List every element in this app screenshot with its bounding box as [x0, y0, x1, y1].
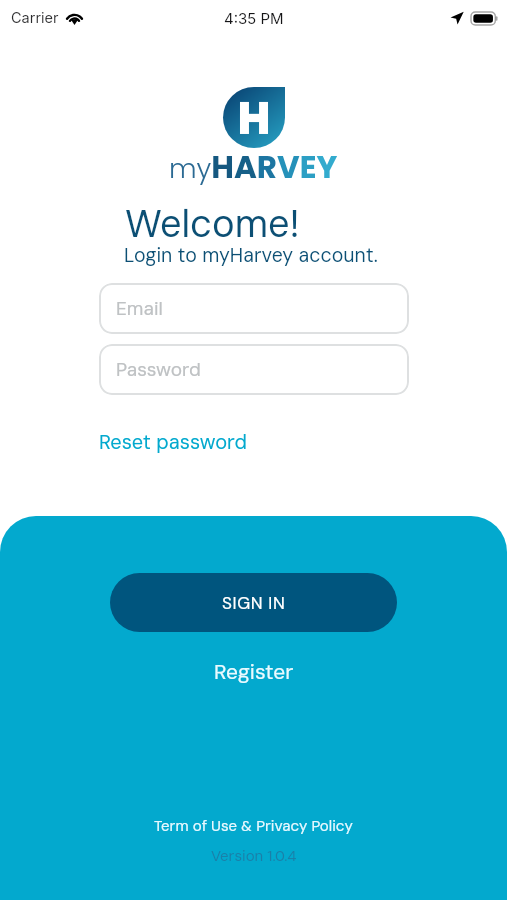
staticText: SIGN IN [222, 592, 286, 614]
staticText: Email [116, 296, 163, 321]
button[interactable]: Password [99, 344, 409, 395]
staticText: myHARVEY [169, 145, 338, 188]
button[interactable]: Register [202, 655, 306, 688]
staticText: 4:35 PM [224, 9, 284, 27]
button[interactable]: Reset password [97, 427, 249, 457]
staticText: Welcome! [125, 199, 300, 248]
button[interactable]: Term of Use & Privacy Policy [150, 813, 357, 839]
other: Battery [471, 12, 498, 25]
staticText: Carrier [11, 9, 59, 27]
button[interactable]: SIGN IN [110, 573, 397, 632]
staticText: Password [116, 357, 201, 382]
staticText: Version 1.0.4 [211, 846, 297, 866]
button[interactable]: Email [99, 283, 409, 334]
other: Location [450, 11, 464, 25]
staticText: Login to myHarvey account. [124, 243, 378, 268]
